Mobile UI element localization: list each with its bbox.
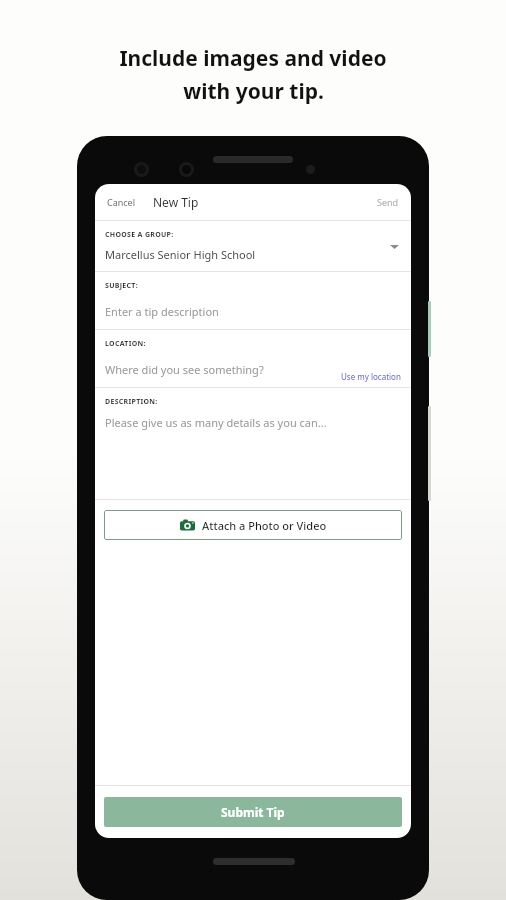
button[interactable]: Submit Tip: [104, 797, 402, 827]
button[interactable]: SUBJECT:: [95, 272, 411, 329]
staticText: Use my location: [341, 371, 401, 382]
staticText: Submit Tip: [221, 804, 285, 820]
staticText: Include images and video: [119, 44, 387, 73]
staticText: Where did you see something?: [105, 362, 264, 377]
staticText: CHOOSE A GROUP:: [105, 230, 174, 240]
staticText: Please give us as many details as you ca…: [105, 415, 327, 430]
staticText: with your tip.: [183, 77, 324, 106]
staticText: SUBJECT:: [105, 281, 138, 291]
staticText: DESCRIPTION:: [105, 397, 158, 407]
button[interactable]: DESCRIPTION:: [95, 388, 411, 499]
button[interactable]: LOCATION:: [95, 330, 411, 387]
button[interactable]: Send: [373, 192, 403, 212]
button[interactable]: Cancel: [103, 192, 140, 212]
button[interactable]: Use my location: [339, 369, 403, 384]
other: Attach a photo or video: [180, 518, 195, 533]
staticText: Attach a Photo or Video: [202, 518, 327, 533]
staticText: Marcellus Senior High School: [105, 247, 256, 262]
staticText: New Tip: [153, 194, 199, 210]
staticText: Enter a tip description: [105, 304, 219, 319]
staticText: Send: [377, 196, 399, 208]
button[interactable]: Attach a photo or video: [104, 510, 402, 540]
staticText: LOCATION:: [105, 339, 146, 349]
staticText: Cancel: [107, 196, 136, 208]
button[interactable]: CHOOSE A GROUP:: [95, 221, 411, 271]
